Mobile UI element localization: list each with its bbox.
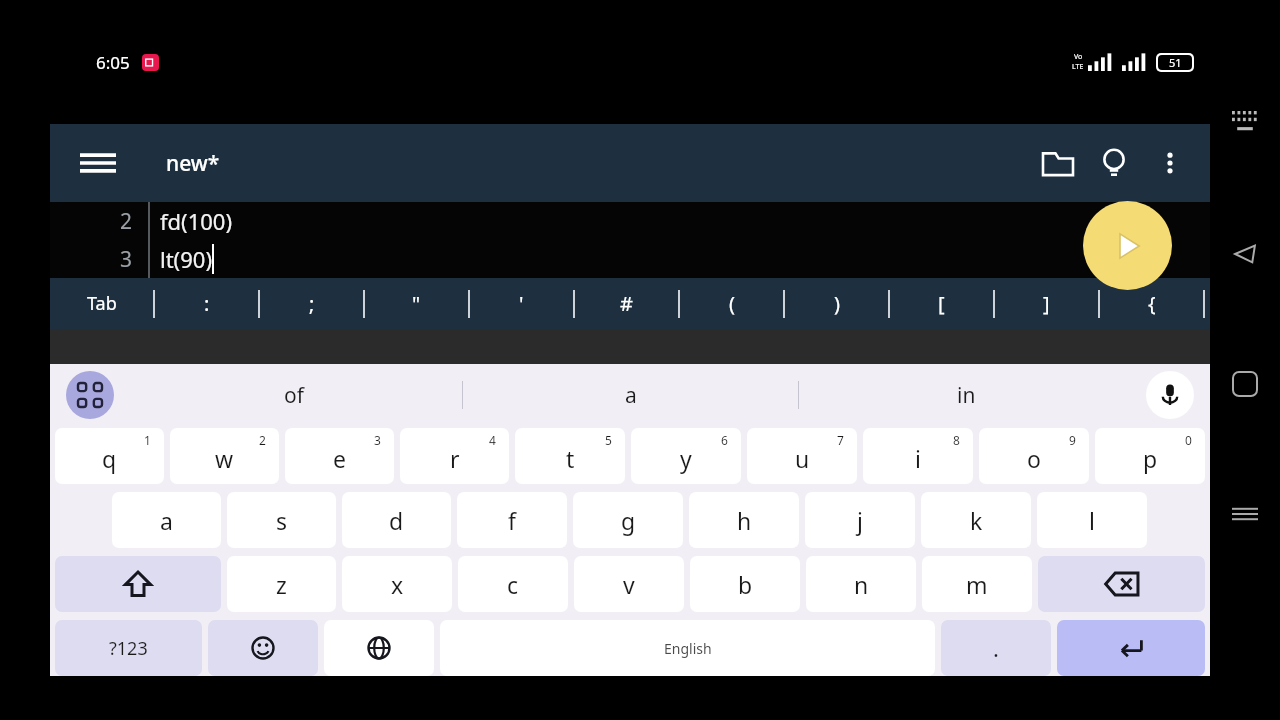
button[interactable]: n (806, 556, 916, 612)
button[interactable]: Open folder (1030, 135, 1086, 191)
button[interactable]: u (747, 428, 857, 484)
button[interactable]: g (573, 492, 683, 548)
staticText: w (215, 443, 234, 474)
button[interactable]: Numbers (55, 620, 202, 676)
button[interactable]: x (342, 556, 452, 612)
staticText: g (621, 505, 636, 536)
button[interactable]: h (689, 492, 799, 548)
button[interactable]: f (457, 492, 567, 548)
staticText: 1 (144, 432, 151, 448)
staticText: 9 (1069, 432, 1076, 448)
button[interactable]: ) (785, 278, 888, 329)
staticText: ] (1043, 290, 1050, 317)
button[interactable]: Voice input (1146, 371, 1194, 419)
staticText: b (738, 569, 753, 600)
button[interactable]: { (1100, 278, 1203, 329)
staticText: [ (938, 290, 945, 317)
staticText: 8 (953, 432, 960, 448)
staticText: n (854, 569, 869, 600)
staticText: e (333, 443, 346, 474)
button[interactable]: a (112, 492, 221, 548)
button[interactable]: c (458, 556, 568, 612)
staticText: c (507, 569, 519, 600)
button[interactable]: l (1037, 492, 1147, 548)
staticText: p (1143, 443, 1158, 474)
button[interactable]: k (921, 492, 1031, 548)
button[interactable]: ] (995, 278, 1098, 329)
button[interactable]: More options (1142, 135, 1198, 191)
button[interactable]: : (155, 278, 258, 329)
button[interactable]: i (863, 428, 973, 484)
button[interactable]: ; (260, 278, 363, 329)
button[interactable]: Change language (324, 620, 434, 676)
staticText: in (957, 381, 976, 410)
button[interactable]: t (515, 428, 625, 484)
staticText: ( (729, 290, 735, 317)
button[interactable]: o (979, 428, 1089, 484)
button[interactable]: Recents (1210, 492, 1280, 536)
button[interactable]: z (227, 556, 336, 612)
staticText: m (966, 569, 988, 600)
button[interactable]: # (575, 278, 678, 329)
staticText: k (970, 505, 983, 536)
staticText: 3 (50, 245, 132, 274)
button[interactable]: Enter (1057, 620, 1205, 676)
staticText: 6:05 (96, 51, 130, 74)
button[interactable]: ' (470, 278, 573, 329)
button[interactable]: Home (1210, 362, 1280, 406)
button[interactable]: s (227, 492, 336, 548)
staticText: q (102, 443, 117, 474)
button[interactable]: Period (941, 620, 1051, 676)
staticText: i (915, 443, 921, 474)
button[interactable]: Tab (50, 278, 153, 329)
staticText: 2 (50, 207, 132, 236)
button[interactable]: of (126, 364, 462, 426)
button[interactable]: Keyboard (1210, 102, 1280, 146)
staticText: lt(90) (160, 244, 212, 274)
button[interactable]: d (342, 492, 451, 548)
staticText: of (284, 381, 304, 410)
staticText: fd(100) (160, 206, 233, 236)
button[interactable]: " (365, 278, 468, 329)
button[interactable]: p (1095, 428, 1205, 484)
staticText: 6 (721, 432, 728, 448)
staticText: d (389, 505, 404, 536)
staticText: ' (519, 290, 524, 317)
button[interactable]: Run (1083, 201, 1172, 290)
staticText: . (993, 633, 999, 663)
button[interactable]: e (285, 428, 394, 484)
button[interactable]: a (463, 364, 798, 426)
button[interactable]: English (440, 620, 935, 676)
button[interactable]: b (690, 556, 800, 612)
staticText: s (276, 505, 288, 536)
button[interactable]: [ (890, 278, 993, 329)
button[interactable]: Emoji (208, 620, 318, 676)
button[interactable]: q (55, 428, 164, 484)
staticText: v (623, 569, 635, 600)
button[interactable]: y (631, 428, 741, 484)
staticText: 51 (1169, 55, 1182, 70)
button[interactable]: Back (1210, 232, 1280, 276)
button[interactable]: r (400, 428, 509, 484)
button[interactable]: Toolbar (66, 371, 114, 419)
staticText: Vo (1074, 52, 1083, 62)
staticText: l (1089, 505, 1095, 536)
staticText: y (680, 443, 692, 474)
staticText: 0 (1185, 432, 1192, 448)
button[interactable]: Hint (1086, 135, 1142, 191)
staticText: 4 (489, 432, 496, 448)
button[interactable]: m (922, 556, 1032, 612)
button[interactable]: in (799, 364, 1134, 426)
button[interactable]: Backspace (1038, 556, 1205, 612)
button[interactable]: j (805, 492, 915, 548)
button[interactable]: ( (680, 278, 783, 329)
button[interactable]: Shift (55, 556, 221, 612)
button[interactable]: Menu (72, 137, 124, 189)
staticText: a (160, 505, 173, 536)
staticText: " (412, 290, 421, 317)
button[interactable]: w (170, 428, 279, 484)
staticText: English (664, 639, 712, 658)
staticText: 2 (259, 432, 266, 448)
button[interactable]: v (574, 556, 684, 612)
staticText: new* (166, 149, 220, 178)
